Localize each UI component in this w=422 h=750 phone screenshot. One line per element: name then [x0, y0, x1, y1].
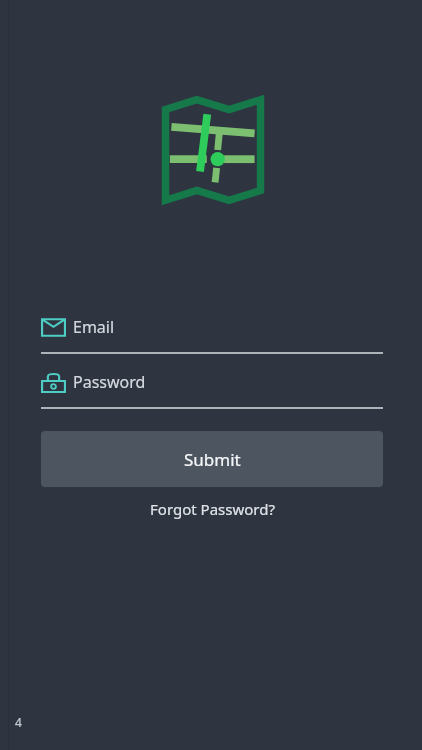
button[interactable]: Password	[41, 367, 383, 397]
staticText: Submit	[184, 448, 241, 471]
staticText: Forgot Password?	[150, 499, 275, 519]
button[interactable]: Forgot Password?	[41, 495, 383, 523]
staticText: 4	[15, 714, 22, 730]
staticText: Email	[73, 316, 115, 338]
other: Password	[41, 370, 66, 395]
button[interactable]: Submit	[41, 431, 383, 487]
other: Email	[41, 315, 66, 340]
staticText: Password	[73, 371, 146, 393]
button[interactable]: Email	[41, 312, 383, 342]
